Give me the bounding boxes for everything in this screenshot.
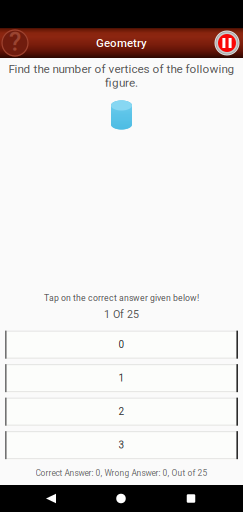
- staticText: Tap on the correct answer given below!: [44, 293, 199, 303]
- button[interactable]: Help: [0, 28, 30, 58]
- staticText: Find the number of vertices of the follo…: [8, 62, 234, 76]
- button[interactable]: 3: [5, 431, 238, 459]
- staticText: 1 Of 25: [104, 308, 139, 321]
- staticText: Correct Answer: 0, Wrong Answer: 0, Out …: [35, 468, 207, 478]
- button[interactable]: Recent apps: [156, 485, 226, 512]
- button[interactable]: Back: [16, 485, 86, 512]
- button[interactable]: 0: [5, 331, 238, 359]
- staticText: ?: [9, 27, 21, 57]
- staticText: figure.: [105, 76, 138, 90]
- button[interactable]: 2: [5, 398, 238, 426]
- staticText: 2: [118, 406, 124, 417]
- staticText: 0: [118, 339, 124, 350]
- staticText: 3: [118, 439, 124, 451]
- button[interactable]: Pause: [213, 28, 241, 58]
- button[interactable]: Home: [86, 485, 156, 512]
- staticText: Geometry: [96, 36, 147, 50]
- button[interactable]: 1: [5, 364, 238, 392]
- staticText: 1: [118, 372, 124, 384]
